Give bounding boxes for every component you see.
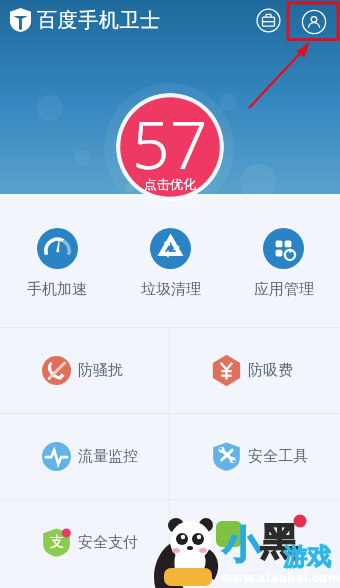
staticText: www.xiaohei.com xyxy=(221,569,340,586)
staticText: 应用管理 xyxy=(254,280,314,299)
staticText: 小 xyxy=(222,521,260,569)
staticText: 百度手机卫士 xyxy=(37,8,161,33)
staticText: 防骚扰 xyxy=(78,361,123,380)
button[interactable]: 安全工具 xyxy=(170,414,340,499)
staticText: 垃圾清理 xyxy=(141,280,201,299)
button[interactable]: 防吸费 xyxy=(170,328,340,413)
staticText: 防吸费 xyxy=(248,361,293,380)
staticText: 手机加速 xyxy=(27,280,87,299)
button[interactable]: 应用管理 xyxy=(227,194,340,327)
staticText: 安全支付 xyxy=(78,533,138,552)
staticText: 安全工具 xyxy=(248,447,308,466)
button[interactable]: 流量监控 xyxy=(0,414,169,499)
button[interactable]: 手机加速 xyxy=(0,194,114,327)
staticText: 支 xyxy=(50,533,64,551)
button[interactable]: 防骚扰 xyxy=(0,328,169,413)
button[interactable]: Toolbox xyxy=(254,6,282,34)
staticText: 57 xyxy=(132,98,208,188)
staticText: 点击优化 xyxy=(144,176,196,192)
staticText: 流量监控 xyxy=(78,447,138,466)
button[interactable]: 57 xyxy=(116,93,224,201)
button[interactable]: 垃圾清理 xyxy=(114,194,227,327)
staticText: 游戏 xyxy=(283,542,331,572)
button[interactable]: 支 xyxy=(0,500,169,585)
staticText: 黑 xyxy=(260,518,298,566)
button[interactable]: Profile xyxy=(300,8,328,36)
